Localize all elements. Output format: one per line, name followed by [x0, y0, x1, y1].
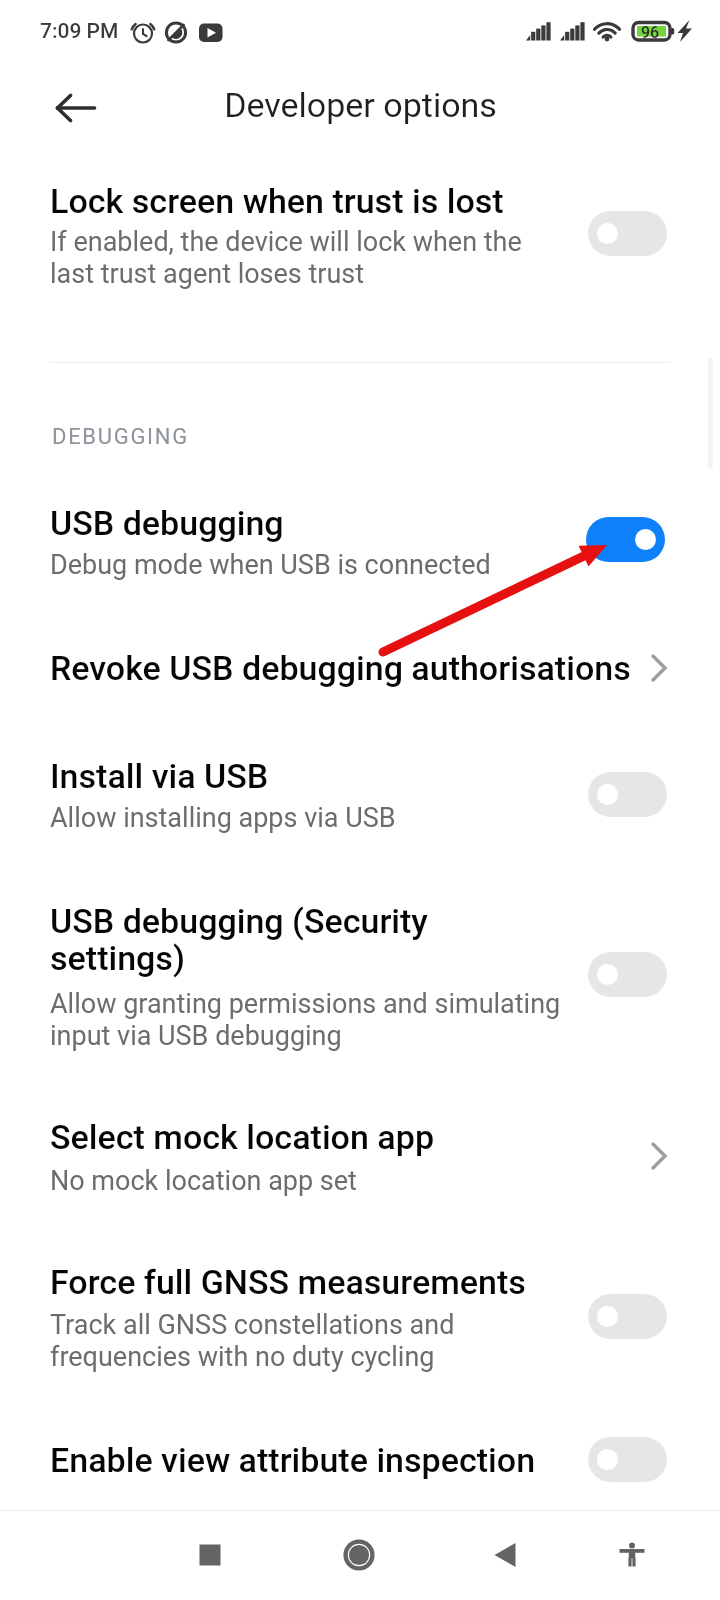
button[interactable]: Install via USB [588, 772, 667, 817]
staticText: Allow granting permissions and simulatin… [50, 988, 561, 1052]
staticText: Allow installing apps via USB [50, 802, 396, 834]
staticText: USB debugging [50, 503, 284, 543]
staticText: No mock location app set [50, 1165, 357, 1197]
button[interactable] [0, 1088, 720, 1218]
button[interactable]: Home [323, 1519, 395, 1591]
button[interactable]: Revoke USB debugging authorisations [634, 643, 684, 693]
staticText: If enabled, the device will lock when th… [50, 226, 522, 290]
button[interactable]: Back [48, 80, 104, 136]
button[interactable]: USB debugging [586, 517, 665, 562]
staticText: DEBUGGING [52, 424, 189, 450]
button[interactable]: Recents [174, 1519, 246, 1591]
staticText: Enable view attribute inspection [50, 1440, 536, 1480]
button[interactable]: Accessibility [596, 1519, 668, 1591]
staticText: Select mock location app [50, 1117, 435, 1157]
button[interactable] [0, 726, 720, 860]
button[interactable]: Lock screen when trust is lost [588, 211, 667, 256]
staticText: Install via USB [50, 756, 269, 796]
button[interactable] [0, 872, 720, 1072]
button[interactable] [0, 470, 720, 600]
staticText: Debug mode when USB is connected [50, 549, 491, 581]
button[interactable]: Select mock location app [634, 1131, 684, 1181]
button[interactable] [0, 1232, 720, 1392]
staticText: Lock screen when trust is lost [50, 181, 504, 221]
staticText: Force full GNSS measurements [50, 1262, 526, 1302]
staticText: USB debugging (Security settings) [50, 901, 428, 978]
button[interactable]: Back [469, 1519, 541, 1591]
staticText: Developer options [224, 85, 497, 125]
button[interactable] [0, 610, 720, 712]
staticText: Track all GNSS constellations and freque… [50, 1309, 455, 1373]
button[interactable] [0, 1408, 720, 1500]
staticText: 96 [641, 23, 660, 42]
button[interactable]: USB debugging (Security settings) [588, 952, 667, 997]
staticText: Revoke USB debugging authorisations [50, 648, 631, 688]
staticText: 7:09 PM [40, 19, 119, 44]
button[interactable]: Enable view attribute inspection [588, 1437, 667, 1482]
button[interactable]: Force full GNSS measurements [588, 1294, 667, 1339]
button[interactable] [0, 156, 720, 362]
